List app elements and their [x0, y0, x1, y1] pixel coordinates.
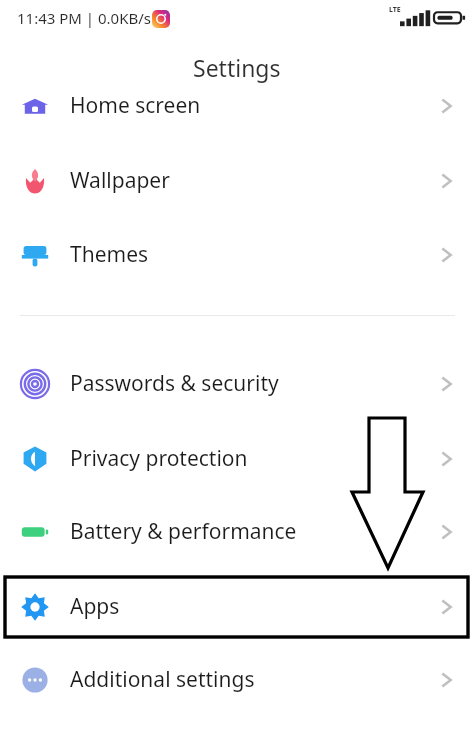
staticText: Additional settings [70, 665, 255, 694]
other: Open Themes [440, 244, 453, 266]
button[interactable]: Battery & performance [0, 495, 474, 568]
button[interactable]: Passwords & security [0, 347, 474, 420]
staticText: Settings [193, 52, 281, 83]
staticText: 11:43 PM | 0.0KB/s [17, 8, 151, 28]
other: Open Apps [440, 596, 453, 618]
staticText: Wallpaper [70, 166, 170, 195]
button[interactable]: Wallpaper [0, 144, 474, 217]
staticText: Themes [70, 240, 149, 269]
other: Open Wallpaper [440, 170, 453, 192]
other: Open Home screen [440, 95, 453, 117]
other: Open Privacy protection [440, 448, 453, 470]
staticText: Home screen [70, 91, 201, 120]
other: Open Additional settings [440, 669, 453, 691]
button[interactable]: Additional settings [0, 643, 474, 716]
button[interactable]: Themes [0, 218, 474, 291]
staticText: Passwords & security [70, 369, 279, 398]
other: Open Battery & performance [440, 521, 453, 543]
button[interactable]: Apps [0, 570, 474, 643]
other: Open Passwords & security [440, 373, 453, 395]
staticText: Battery & performance [70, 517, 297, 546]
button[interactable]: Privacy protection [0, 422, 474, 495]
staticText: Apps [70, 592, 120, 621]
staticText: LTE [389, 5, 401, 15]
staticText: Privacy protection [70, 444, 248, 473]
button[interactable]: Home screen [0, 69, 474, 142]
